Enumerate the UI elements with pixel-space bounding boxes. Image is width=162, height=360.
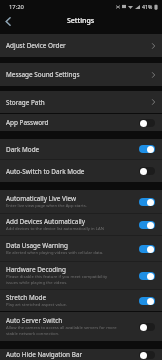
staticText: Data Usage Warning [6, 241, 68, 250]
staticText: Stretch Mode [6, 293, 47, 302]
button[interactable]: Data Usage Warning [0, 236, 162, 261]
staticText: Message Sound Settings [6, 70, 80, 79]
button[interactable]: Automatically Live View [0, 190, 162, 213]
button[interactable]: Storage Path [0, 91, 162, 113]
staticText: Enter live view page when the App starts… [6, 203, 87, 209]
staticText: Automatically Live View [6, 194, 77, 203]
button[interactable]: Adjust Device Order [0, 34, 162, 57]
staticText: Settings [67, 16, 95, 26]
staticText: Add Devices Automatically [6, 217, 85, 226]
staticText: App Password [6, 118, 49, 127]
staticText: Add devices to the device list automatic… [6, 226, 104, 232]
button[interactable]: Toggle [139, 245, 155, 253]
button[interactable]: Toggle [139, 198, 155, 206]
button[interactable]: Auto Hide Navigation Bar [0, 349, 162, 360]
button[interactable]: Toggle [139, 221, 155, 229]
button[interactable]: Toggle [139, 167, 155, 175]
staticText: Be alerted when playing videos with cell… [6, 250, 104, 256]
button[interactable]: Stretch Mode [0, 290, 162, 311]
staticText: Allow the camera to access all available… [6, 325, 117, 337]
button[interactable]: Dark Mode [0, 139, 162, 159]
button[interactable]: Toggle [139, 119, 155, 127]
staticText: Please disable this feature if you meet … [6, 274, 108, 286]
staticText: Dark Mode [6, 145, 40, 154]
button[interactable]: Back [0, 13, 16, 29]
button[interactable]: Auto Server Switch [0, 312, 162, 341]
button[interactable]: Hardware Decoding [0, 262, 162, 289]
button[interactable]: Toggle [139, 145, 155, 153]
staticText: Adjust Device Order [6, 41, 66, 50]
button[interactable]: Toggle [139, 323, 155, 331]
button[interactable]: Toggle [139, 351, 155, 359]
staticText: Auto Hide Navigation Bar [6, 350, 83, 359]
button[interactable]: Auto-Switch to Dark Mode [0, 160, 162, 182]
button[interactable]: Message Sound Settings [0, 63, 162, 86]
staticText: 17:20 [9, 3, 24, 11]
staticText: Auto Server Switch [6, 316, 63, 325]
staticText: 41% [142, 3, 153, 10]
staticText: Play art stretched aspect value. [6, 302, 68, 308]
staticText: Auto-Switch to Dark Mode [6, 167, 85, 176]
staticText: Storage Path [6, 98, 45, 107]
button[interactable]: Toggle [139, 297, 155, 305]
staticText: Hardware Decoding [6, 265, 66, 274]
button[interactable]: Add Devices Automatically [0, 214, 162, 235]
button[interactable]: Toggle [139, 272, 155, 280]
button[interactable]: App Password [0, 114, 162, 131]
